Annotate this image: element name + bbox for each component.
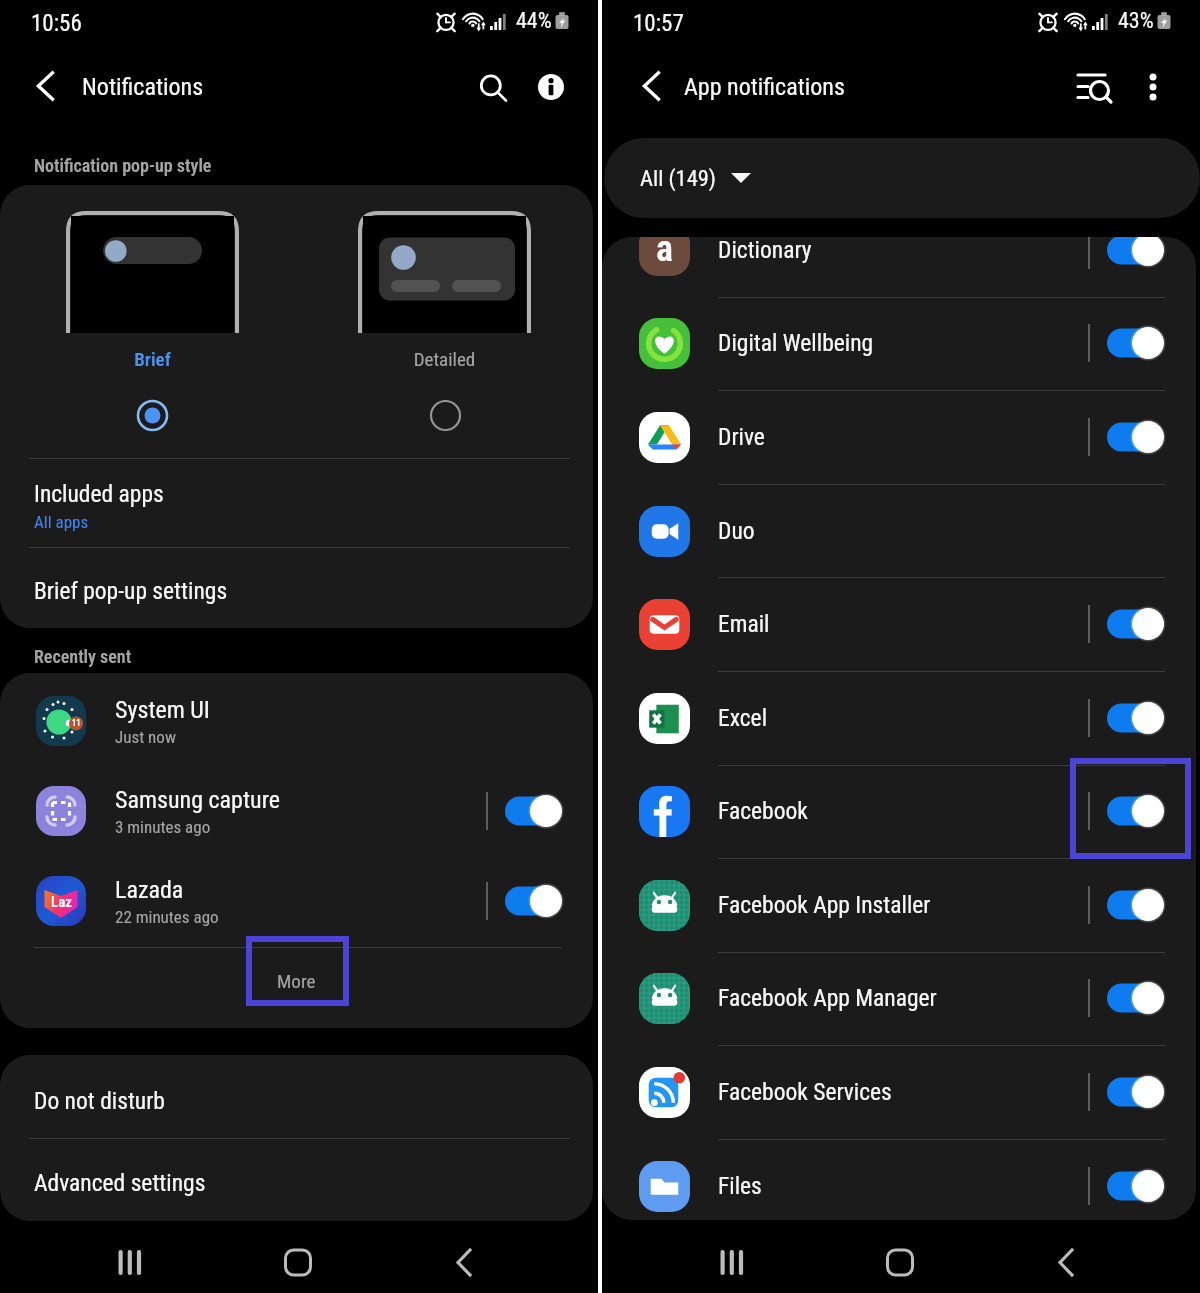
button[interactable]: Notification toggle, on <box>1106 325 1164 361</box>
button[interactable]: Recent apps <box>709 1240 754 1285</box>
button[interactable]: Excel <box>602 671 1196 765</box>
button[interactable]: Advanced settings <box>0 1139 593 1221</box>
staticText: 10:56 <box>31 10 82 37</box>
button[interactable]: Included apps <box>0 458 593 547</box>
staticText: All apps <box>34 512 89 532</box>
button[interactable]: Notification toggle, on <box>1106 1074 1164 1110</box>
button[interactable]: Search <box>472 67 512 107</box>
staticText: Facebook Services <box>718 1078 892 1106</box>
button[interactable]: Drive <box>602 390 1196 484</box>
staticText: Notification pop-up style <box>34 155 212 176</box>
button[interactable]: Back <box>442 1240 487 1285</box>
button[interactable]: 11 <box>0 676 593 766</box>
staticText: Samsung capture <box>115 786 280 814</box>
staticText: Lazada <box>115 876 184 904</box>
button[interactable]: Laz <box>0 856 593 946</box>
staticText: Facebook App Manager <box>718 984 937 1012</box>
staticText: Detailed <box>358 348 531 370</box>
button[interactable]: Notification toggle, on <box>1106 793 1164 829</box>
button[interactable]: Brief, selected <box>137 400 168 431</box>
staticText: App notifications <box>684 73 845 101</box>
staticText: Recently sent <box>34 646 132 667</box>
staticText: All (149) <box>640 165 717 191</box>
staticText: Facebook App Installer <box>718 891 931 919</box>
button[interactable]: Notification toggle, on <box>1106 887 1164 923</box>
button[interactable]: Back <box>638 70 670 102</box>
staticText: Brief pop-up settings <box>34 577 228 605</box>
staticText: Drive <box>718 423 765 451</box>
button[interactable]: Samsung capture <box>0 766 593 856</box>
button[interactable]: a <box>602 237 1196 297</box>
button[interactable]: Detailed preview <box>358 211 531 333</box>
button[interactable]: Home <box>275 1240 320 1285</box>
button[interactable]: Notification toggle, on <box>1106 700 1164 736</box>
button[interactable]: Email <box>602 577 1196 671</box>
staticText: System UI <box>115 696 210 724</box>
button[interactable]: Facebook <box>602 764 1196 858</box>
button[interactable]: Facebook App Manager <box>602 951 1196 1045</box>
button[interactable]: Home <box>877 1240 922 1285</box>
button[interactable]: Notification toggle, on <box>1106 419 1164 455</box>
staticText: Included apps <box>34 480 164 508</box>
button[interactable]: Do not disturb <box>0 1055 593 1138</box>
staticText: 11 <box>72 718 81 728</box>
button[interactable]: All (149) <box>604 138 1200 218</box>
button[interactable]: Info <box>531 67 571 107</box>
staticText: Files <box>718 1172 762 1200</box>
button[interactable]: Facebook App Installer <box>602 858 1196 952</box>
button[interactable]: Back <box>1044 1240 1089 1285</box>
button[interactable]: Sort and search <box>1076 67 1116 107</box>
staticText: Email <box>718 610 770 638</box>
staticText: 10:57 <box>633 10 684 37</box>
staticText: Do not disturb <box>34 1087 165 1115</box>
button[interactable]: Notification toggle, on <box>1106 606 1164 642</box>
staticText: Advanced settings <box>34 1169 206 1197</box>
button[interactable]: Recent apps <box>107 1240 152 1285</box>
button[interactable]: Facebook Services <box>602 1045 1196 1139</box>
staticText: More <box>277 970 316 992</box>
button[interactable]: Digital Wellbeing <box>602 296 1196 390</box>
button[interactable]: Detailed <box>430 400 461 431</box>
staticText: 22 minutes ago <box>115 907 219 927</box>
button[interactable]: Notification toggle, on <box>1106 1168 1164 1204</box>
button[interactable]: More options <box>1133 67 1173 107</box>
button[interactable]: Notification toggle, on <box>504 793 562 829</box>
button[interactable]: More <box>0 948 593 1028</box>
staticText: Laz <box>51 893 72 911</box>
staticText: Brief <box>66 348 239 370</box>
staticText: Facebook <box>718 797 808 825</box>
button[interactable]: Notification toggle, on <box>504 883 562 919</box>
button[interactable]: Files <box>602 1139 1196 1220</box>
staticText: 3 minutes ago <box>115 817 211 837</box>
staticText: 43% <box>1118 8 1154 30</box>
staticText: Dictionary <box>718 237 812 264</box>
button[interactable]: Brief preview <box>66 211 239 333</box>
button[interactable]: Notification toggle, on <box>1106 237 1164 268</box>
staticText: a <box>656 237 674 270</box>
button[interactable]: Brief pop-up settings <box>0 548 593 628</box>
staticText: Just now <box>115 727 176 747</box>
button[interactable]: Notification toggle, on <box>1106 980 1164 1016</box>
button[interactable]: Back <box>32 70 64 102</box>
staticText: Digital Wellbeing <box>718 329 874 357</box>
staticText: 44% <box>516 8 552 30</box>
staticText: Duo <box>718 517 755 545</box>
staticText: Notifications <box>82 73 204 101</box>
button[interactable]: Duo <box>602 484 1196 578</box>
staticText: Excel <box>718 704 768 732</box>
